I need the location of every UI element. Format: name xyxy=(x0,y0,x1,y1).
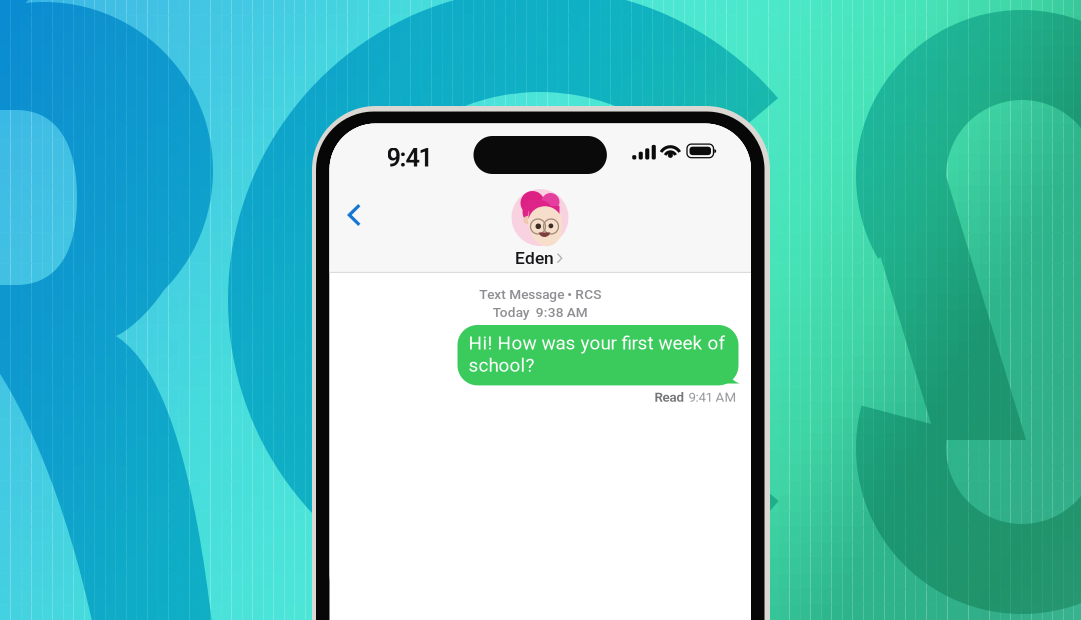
staticText: Hi! How was your first week of school? xyxy=(468,332,725,376)
button[interactable]: Back xyxy=(343,195,383,235)
staticText: 9:41 xyxy=(386,143,432,173)
staticText: Read xyxy=(654,389,684,405)
staticText: Eden xyxy=(515,248,554,268)
button[interactable]: Eden xyxy=(488,189,592,267)
staticText: Today 9:38 AM xyxy=(493,304,588,320)
staticText: 9:41 AM xyxy=(688,389,736,405)
staticText: Text Message • RCS xyxy=(479,286,601,302)
